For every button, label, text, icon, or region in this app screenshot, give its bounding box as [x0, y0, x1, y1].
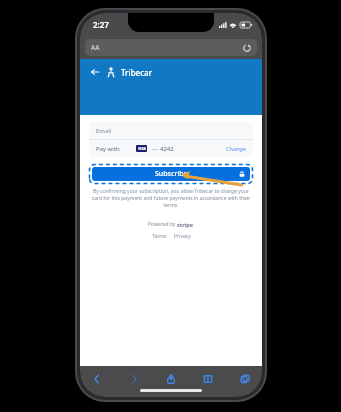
staticText: Pay with — [96, 145, 120, 153]
button[interactable]: Terms — [152, 233, 167, 240]
button[interactable]: Reload — [242, 43, 252, 53]
button[interactable]: Share — [163, 371, 179, 387]
button[interactable]: Change — [226, 145, 246, 152]
button[interactable]: Email — [89, 122, 253, 139]
staticText: Email — [96, 127, 112, 135]
button[interactable]: Pay with — [96, 140, 246, 157]
button[interactable]: Bookmarks — [200, 371, 216, 387]
button[interactable]: Back — [89, 371, 105, 387]
button[interactable]: Privacy — [174, 233, 191, 240]
button[interactable]: Tabs — [237, 371, 253, 387]
button[interactable]: Back — [89, 66, 101, 78]
staticText: VISA — [138, 146, 146, 151]
button[interactable]: Forward — [126, 371, 142, 387]
staticText: By confirming your subscription, you all… — [91, 188, 251, 209]
staticText: 2:27 — [93, 19, 109, 30]
staticText: Subscribe — [155, 169, 188, 179]
staticText: ···· 4242 — [152, 145, 174, 153]
staticText: AA — [91, 43, 100, 52]
staticText: Powered by — [148, 221, 177, 228]
button[interactable]: Subscribe — [92, 167, 250, 181]
staticText: Tribecar — [121, 67, 153, 78]
button[interactable]: AA — [85, 39, 257, 56]
staticText: stripe — [177, 221, 194, 228]
